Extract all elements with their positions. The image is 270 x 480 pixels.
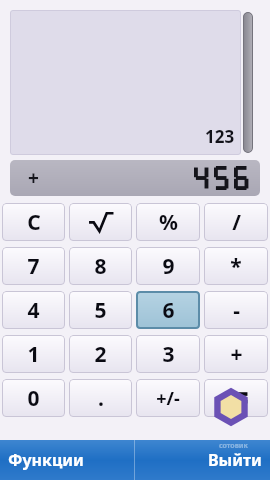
staticText: / bbox=[232, 208, 241, 237]
button[interactable]: / bbox=[204, 203, 268, 241]
button[interactable]: * bbox=[204, 247, 268, 285]
button[interactable]: . bbox=[69, 379, 132, 417]
button[interactable]: 0 bbox=[2, 379, 65, 417]
staticText: 4 bbox=[27, 296, 40, 325]
staticText: 5 bbox=[94, 296, 107, 325]
button[interactable]: 123 bbox=[10, 10, 241, 155]
staticText: % bbox=[159, 208, 178, 237]
button[interactable]: 7 bbox=[2, 247, 65, 285]
staticText: +/- bbox=[156, 386, 180, 411]
button[interactable]: 9 bbox=[136, 247, 200, 285]
button[interactable]: + bbox=[204, 335, 268, 373]
staticText: 9 bbox=[162, 252, 175, 281]
staticText: C bbox=[27, 208, 41, 237]
button[interactable]: 4 bbox=[2, 291, 65, 329]
button[interactable]: 6 bbox=[136, 291, 200, 329]
button[interactable]: 3 bbox=[136, 335, 200, 373]
button[interactable]: 8 bbox=[69, 247, 132, 285]
button[interactable]: C bbox=[2, 203, 65, 241]
staticText: 2 bbox=[94, 340, 107, 369]
staticText: Выйти bbox=[208, 449, 262, 471]
staticText: Функции bbox=[8, 449, 84, 471]
staticText: 7 bbox=[27, 252, 40, 281]
staticText: * bbox=[230, 252, 242, 281]
other: Badge bbox=[210, 386, 252, 428]
staticText: 3 bbox=[162, 340, 175, 369]
staticText: 1 bbox=[27, 340, 40, 369]
button[interactable]: 2 bbox=[69, 335, 132, 373]
staticText: 8 bbox=[94, 252, 107, 281]
button[interactable] bbox=[69, 203, 132, 241]
staticText: + bbox=[28, 165, 39, 191]
other: Scrollbar bbox=[243, 12, 253, 153]
button[interactable]: +/- bbox=[136, 379, 200, 417]
button[interactable]: Функции bbox=[0, 440, 134, 480]
button[interactable] bbox=[204, 379, 268, 417]
staticText: 123 bbox=[205, 125, 235, 148]
staticText: сотовик bbox=[219, 441, 248, 451]
button[interactable]: 1 bbox=[2, 335, 65, 373]
staticText: 0 bbox=[27, 384, 40, 413]
button[interactable]: Выйти bbox=[135, 440, 270, 480]
staticText: + bbox=[230, 340, 243, 369]
staticText: - bbox=[233, 296, 240, 325]
staticText: 6 bbox=[162, 296, 175, 325]
button[interactable]: - bbox=[204, 291, 268, 329]
button[interactable]: 5 bbox=[69, 291, 132, 329]
button[interactable]: + bbox=[10, 160, 260, 196]
staticText: . bbox=[98, 384, 104, 413]
button[interactable]: % bbox=[136, 203, 200, 241]
